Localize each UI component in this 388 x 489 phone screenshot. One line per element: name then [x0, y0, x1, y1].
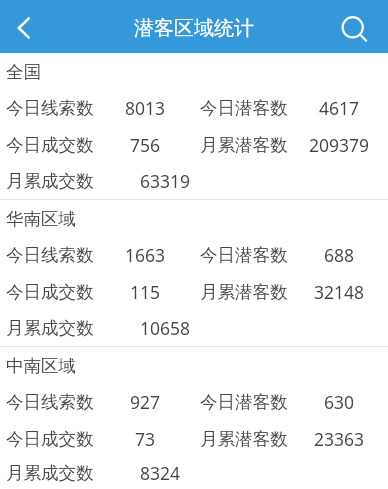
button[interactable]: 全国 [0, 53, 388, 90]
button[interactable]: 今日线索数 [0, 90, 388, 126]
staticText: 209379 [309, 133, 370, 157]
staticText: 月累潜客数 [200, 134, 288, 156]
button[interactable]: Search [318, 0, 388, 53]
button[interactable]: 今日成交数 [0, 420, 388, 457]
staticText: 630 [324, 390, 355, 414]
staticText: 73 [135, 427, 156, 451]
staticText: 月累潜客数 [200, 428, 288, 450]
staticText: 今日潜客数 [200, 97, 288, 119]
button[interactable]: 月累成交数 [0, 310, 388, 346]
staticText: 今日潜客数 [200, 244, 288, 266]
staticText: 756 [130, 133, 161, 157]
staticText: 63319 [140, 169, 191, 193]
staticText: 32148 [314, 280, 365, 304]
staticText: 1663 [125, 243, 166, 267]
button[interactable]: 月累成交数 [0, 457, 388, 489]
staticText: 688 [324, 243, 355, 267]
staticText: 23363 [314, 427, 365, 451]
staticText: 4617 [319, 96, 360, 120]
staticText: 月累成交数 [6, 170, 94, 192]
staticText: 今日成交数 [6, 281, 94, 303]
button[interactable]: 今日线索数 [0, 237, 388, 273]
button[interactable]: 今日成交数 [0, 126, 388, 163]
staticText: 全国 [6, 61, 41, 83]
staticText: 今日线索数 [6, 97, 94, 119]
button[interactable]: 今日成交数 [0, 273, 388, 310]
button[interactable]: Back [0, 0, 47, 53]
staticText: 月累成交数 [6, 317, 94, 339]
staticText: 今日线索数 [6, 244, 94, 266]
staticText: 今日成交数 [6, 428, 94, 450]
staticText: 8013 [125, 96, 166, 120]
staticText: 10658 [140, 316, 191, 340]
staticText: 今日潜客数 [200, 391, 288, 413]
staticText: 今日线索数 [6, 391, 94, 413]
button[interactable]: 中南区域 [0, 347, 388, 384]
button[interactable]: 华南区域 [0, 200, 388, 237]
staticText: 8324 [140, 461, 181, 485]
button[interactable]: 月累成交数 [0, 163, 388, 199]
staticText: 华南区域 [6, 208, 76, 230]
button[interactable]: 今日线索数 [0, 384, 388, 420]
staticText: 115 [130, 280, 161, 304]
staticText: 今日成交数 [6, 134, 94, 156]
staticText: 中南区域 [6, 355, 76, 377]
staticText: 潜客区域统计 [134, 16, 254, 41]
staticText: 927 [130, 390, 161, 414]
staticText: 月累成交数 [6, 462, 94, 484]
staticText: 月累潜客数 [200, 281, 288, 303]
